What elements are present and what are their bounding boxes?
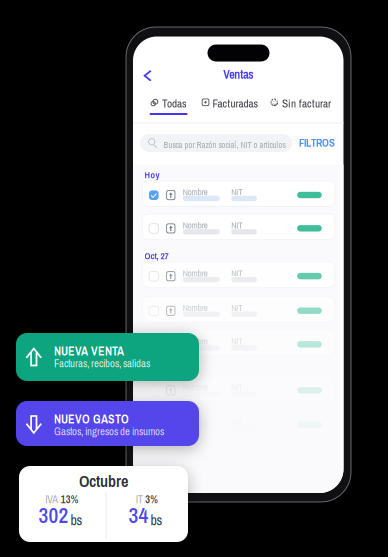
staticText: Nombre (183, 267, 208, 279)
button[interactable]: Facturadas (133, 95, 343, 117)
button[interactable]: Todas (133, 95, 343, 117)
staticText: Oct, 27 (144, 249, 168, 262)
staticText: NIT (231, 335, 242, 347)
staticText: IT (136, 492, 143, 506)
staticText: Todas (162, 96, 187, 111)
staticText: 34 (128, 501, 148, 530)
button[interactable]: Nombre (142, 214, 335, 240)
button[interactable]: Nombre (142, 330, 335, 356)
staticText: bs (70, 511, 82, 530)
staticText: NIT (231, 381, 242, 393)
button[interactable]: Back (138, 66, 156, 84)
staticText: Ventas (223, 66, 253, 83)
staticText: Nombre (183, 381, 208, 393)
button[interactable]: Nombre (142, 410, 335, 436)
button[interactable]: Sin facturar (133, 95, 343, 117)
button[interactable]: Nombre (142, 262, 335, 287)
button[interactable]: NUEVO GASTO (16, 401, 199, 446)
button[interactable]: Nombre (142, 181, 335, 206)
staticText: NUEVO GASTO (54, 411, 129, 427)
staticText: NIT (231, 186, 242, 198)
staticText: Nombre (183, 302, 208, 314)
staticText: NIT (231, 219, 242, 231)
staticText: Sin facturar (282, 96, 331, 111)
staticText: 3% (145, 492, 158, 506)
button[interactable]: NUEVA VENTA (16, 333, 199, 381)
staticText: Nombre (183, 335, 208, 347)
staticText: 302 (38, 501, 68, 530)
staticText: Octubre (79, 470, 128, 492)
staticText: Facturadas (212, 96, 258, 111)
staticText: Hoy (144, 168, 159, 181)
staticText: Nombre (183, 219, 208, 231)
staticText: NIT (231, 267, 242, 279)
staticText: NUEVA VENTA (54, 343, 124, 359)
staticText: Busca por Razón social, NIT o artículos (163, 139, 285, 150)
staticText: FILTROS (299, 136, 335, 150)
button[interactable]: Nombre (142, 296, 335, 322)
staticText: Facturas, recibos, salidas (54, 356, 150, 370)
staticText: Oct, 26 (144, 365, 168, 378)
button[interactable]: FILTROS (299, 134, 335, 152)
staticText: 13% (61, 492, 79, 506)
staticText: IVA (45, 492, 58, 506)
staticText: Nombre (183, 416, 208, 428)
staticText: Nombre (183, 186, 208, 198)
staticText: NIT (231, 302, 242, 314)
button[interactable]: Nombre (142, 376, 335, 402)
staticText: Gastos, ingresos de insumos (54, 424, 164, 438)
staticText: bs (150, 511, 162, 530)
